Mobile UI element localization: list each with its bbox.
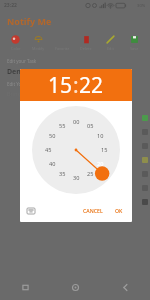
staticText: 05 <box>87 122 94 130</box>
button[interactable]: Recents <box>0 274 50 300</box>
staticText: Edit your Task <box>7 58 37 64</box>
button[interactable]: Minute dial <box>32 106 120 194</box>
staticText: 25 <box>87 170 94 178</box>
staticText: Edit Your Notes <box>7 81 40 87</box>
staticText: Dentist <box>7 67 33 77</box>
staticText: 35 <box>59 170 66 178</box>
staticText: OK <box>115 207 123 214</box>
staticText: Bring records <box>7 90 42 97</box>
button[interactable]: OK <box>111 204 127 217</box>
staticText: 15 <box>48 71 73 100</box>
staticText: 30 <box>73 174 80 182</box>
staticText: 40 <box>49 160 56 168</box>
button[interactable]: Color <box>4 33 27 52</box>
button[interactable]: Tool <box>142 115 148 121</box>
button[interactable]: Save <box>122 33 146 52</box>
staticText: 10 <box>97 132 104 140</box>
staticText: 50 <box>49 132 56 140</box>
staticText: Notify Me <box>7 15 52 27</box>
staticText: 22 <box>79 71 104 100</box>
staticText: 55 <box>59 122 66 130</box>
staticText: : <box>73 71 79 100</box>
button[interactable]: Switch to keyboard input <box>25 205 37 217</box>
staticText: 15 <box>101 146 108 154</box>
button[interactable]: Edit <box>98 33 122 52</box>
button[interactable]: 15 <box>20 69 132 101</box>
button[interactable]: Back <box>100 274 150 300</box>
staticText: CANCEL <box>83 207 103 214</box>
staticText: 20 <box>97 160 104 168</box>
staticText: 30% <box>137 3 146 9</box>
staticText: 45 <box>45 146 52 154</box>
button[interactable]: CANCEL <box>79 204 107 217</box>
button[interactable]: Home <box>50 274 100 300</box>
staticText: 23:22 <box>4 2 17 9</box>
button[interactable]: Modify <box>27 33 50 52</box>
button[interactable]: Delete <box>74 33 98 52</box>
staticText: 00 <box>73 118 80 126</box>
